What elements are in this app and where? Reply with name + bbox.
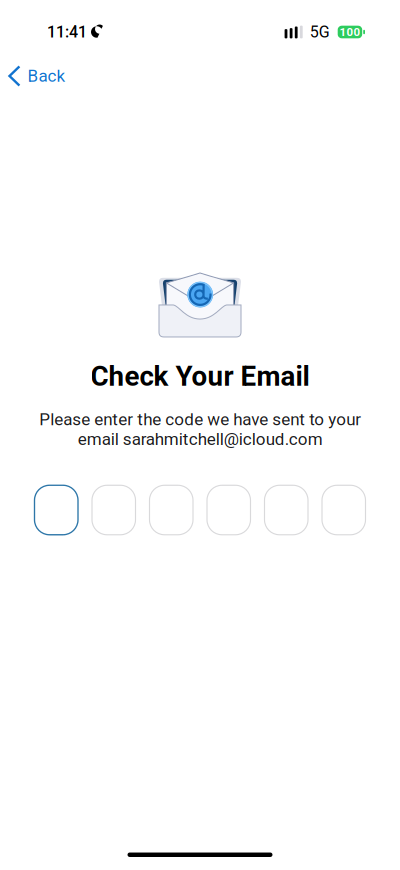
button[interactable]: Verification code digit 2 xyxy=(92,485,135,535)
button[interactable]: Verification code digit 6 xyxy=(322,485,365,535)
button[interactable]: Verification code digit 5 xyxy=(264,485,308,535)
button[interactable]: Verification code digit 1 xyxy=(34,485,78,535)
button[interactable]: Verification code digit 4 xyxy=(207,485,250,535)
staticText: 100 xyxy=(339,25,360,39)
staticText: 11:41 xyxy=(47,23,87,41)
staticText: Back xyxy=(28,66,66,86)
staticText: Check Your Email xyxy=(90,360,309,392)
button[interactable]: Back xyxy=(0,57,73,95)
staticText: Please enter the code we have sent to yo… xyxy=(39,409,361,449)
button[interactable]: Verification code digit 3 xyxy=(149,485,193,535)
staticText: 5G xyxy=(310,23,330,41)
